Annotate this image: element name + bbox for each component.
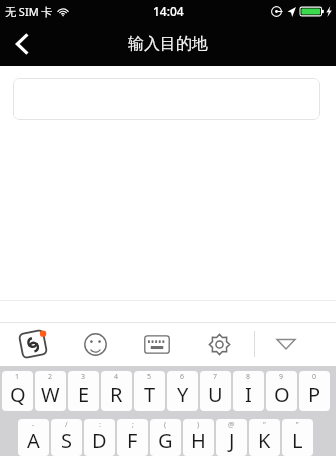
staticText: 无 SIM 卡 bbox=[5, 4, 53, 19]
staticText: ” bbox=[296, 420, 299, 430]
staticText: T bbox=[144, 381, 156, 408]
button[interactable]: 8 bbox=[233, 371, 264, 411]
button[interactable]: - bbox=[18, 419, 49, 456]
button[interactable]: ) bbox=[183, 419, 214, 456]
button[interactable]: 7 bbox=[200, 371, 231, 411]
staticText: D bbox=[92, 427, 107, 454]
staticText: : bbox=[99, 420, 101, 430]
staticText: 8 bbox=[246, 372, 251, 382]
staticText: F bbox=[127, 427, 138, 454]
button[interactable]: Hide keyboard bbox=[255, 322, 317, 366]
button[interactable]: / bbox=[51, 419, 82, 456]
staticText: 1 bbox=[15, 372, 20, 382]
staticText: G bbox=[158, 427, 173, 454]
staticText: Q bbox=[10, 381, 26, 408]
staticText: ) bbox=[197, 420, 200, 430]
staticText: 14:04 bbox=[153, 3, 184, 19]
button[interactable]: Back bbox=[0, 22, 44, 66]
button[interactable]: 1 bbox=[2, 371, 33, 411]
button[interactable]: 6 bbox=[167, 371, 198, 411]
button[interactable]: ; bbox=[117, 419, 148, 456]
staticText: R bbox=[110, 381, 123, 408]
staticText: E bbox=[78, 381, 90, 408]
staticText: ; bbox=[132, 420, 134, 430]
staticText: L bbox=[292, 427, 303, 454]
staticText: / bbox=[65, 420, 68, 430]
button[interactable] bbox=[13, 78, 320, 120]
staticText: I bbox=[245, 381, 252, 408]
button[interactable]: Keyboard bbox=[126, 322, 188, 366]
staticText: W bbox=[41, 381, 60, 408]
button[interactable]: 2 bbox=[35, 371, 66, 411]
staticText: 9 bbox=[279, 372, 284, 382]
button[interactable]: Settings bbox=[188, 322, 250, 366]
staticText: O bbox=[274, 381, 290, 408]
staticText: S bbox=[61, 427, 72, 454]
staticText: @ bbox=[228, 420, 235, 430]
staticText: 3 bbox=[81, 372, 86, 382]
staticText: K bbox=[258, 427, 271, 454]
staticText: 输入目的地 bbox=[128, 34, 208, 54]
staticText: A bbox=[27, 427, 40, 454]
staticText: " bbox=[263, 420, 266, 430]
button[interactable]: @ bbox=[216, 419, 247, 456]
button[interactable]: ( bbox=[150, 419, 181, 456]
button[interactable]: 0 bbox=[299, 371, 330, 411]
staticText: J bbox=[229, 427, 235, 454]
button[interactable]: 9 bbox=[266, 371, 297, 411]
staticText: 4 bbox=[114, 372, 119, 382]
staticText: 7 bbox=[213, 372, 218, 382]
staticText: 2 bbox=[48, 372, 53, 382]
staticText: 0 bbox=[312, 372, 317, 382]
staticText: 6 bbox=[180, 372, 185, 382]
staticText: ( bbox=[164, 420, 167, 430]
staticText: U bbox=[208, 381, 223, 408]
button[interactable]: " bbox=[249, 419, 280, 456]
staticText: - bbox=[32, 420, 35, 430]
button[interactable]: Sogou input bbox=[2, 322, 64, 366]
staticText: 5 bbox=[147, 372, 152, 382]
button[interactable]: 5 bbox=[134, 371, 165, 411]
button[interactable]: ” bbox=[282, 419, 313, 456]
staticText: Y bbox=[177, 381, 189, 408]
button[interactable]: 3 bbox=[68, 371, 99, 411]
button[interactable]: Emoji bbox=[64, 322, 126, 366]
staticText: H bbox=[191, 427, 206, 454]
button[interactable]: : bbox=[84, 419, 115, 456]
button[interactable]: 4 bbox=[101, 371, 132, 411]
staticText: P bbox=[308, 381, 321, 408]
